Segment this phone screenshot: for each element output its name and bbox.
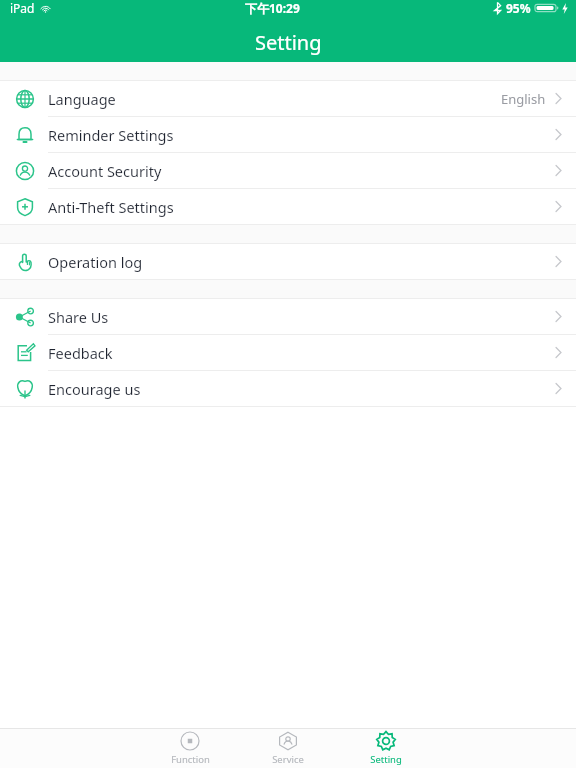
staticText: Setting — [255, 29, 322, 56]
staticText: 下午10:29 — [245, 0, 300, 16]
staticText: iPad — [10, 0, 35, 16]
staticText: Language — [48, 89, 116, 109]
staticText: Operation log — [48, 252, 143, 272]
button[interactable]: Reminder Settings — [0, 117, 576, 152]
button[interactable]: Anti-Theft Settings — [0, 189, 576, 224]
staticText: Setting — [370, 753, 402, 766]
button[interactable]: Function — [159, 729, 221, 768]
staticText: Share Us — [48, 307, 109, 327]
button[interactable]: Share Us — [0, 299, 576, 334]
staticText: Reminder Settings — [48, 125, 174, 145]
staticText: Account Security — [48, 161, 162, 181]
button[interactable]: Service — [257, 729, 319, 768]
staticText: 95% — [506, 0, 531, 16]
staticText: Service — [272, 753, 304, 766]
button[interactable]: Operation log — [0, 244, 576, 279]
button[interactable]: Feedback — [0, 335, 576, 370]
staticText: Anti-Theft Settings — [48, 197, 174, 217]
staticText: Encourage us — [48, 379, 141, 399]
staticText: English — [501, 90, 546, 108]
button[interactable]: Account Security — [0, 153, 576, 188]
button[interactable]: Encourage us — [0, 371, 576, 406]
staticText: Feedback — [48, 343, 113, 363]
staticText: Function — [171, 753, 210, 766]
button[interactable]: Setting — [355, 729, 417, 768]
button[interactable]: Language — [0, 81, 576, 116]
